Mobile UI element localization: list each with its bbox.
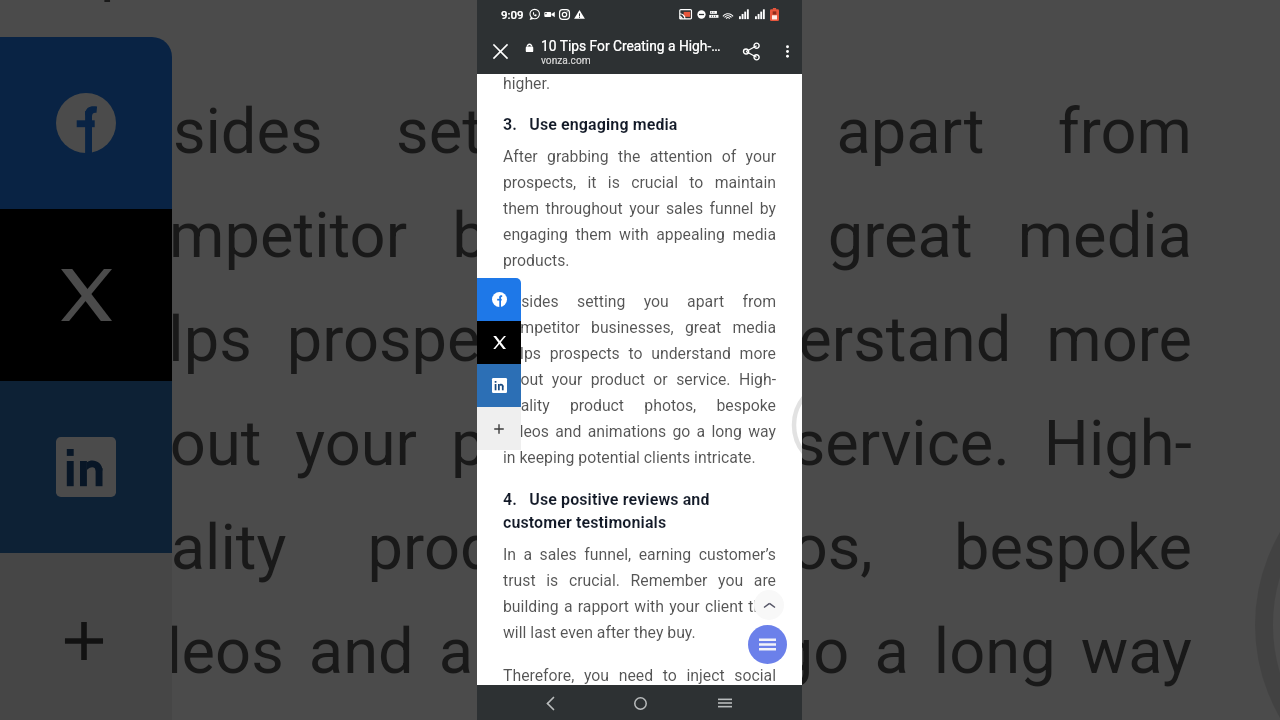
button[interactable]: X <box>477 321 521 364</box>
staticText: Besides setting you apart from competito… <box>100 93 1192 720</box>
button[interactable]: Close <box>477 28 524 74</box>
staticText: After grabbing the attention of your pro… <box>100 0 1192 1</box>
button[interactable]: Share <box>729 28 773 74</box>
staticText: Therefore, you need to inject social pro… <box>503 666 776 685</box>
button[interactable]: Back <box>531 684 569 720</box>
staticText: higher. <box>503 74 551 93</box>
button[interactable]: LinkedIn <box>477 364 521 407</box>
staticText: vonza.com <box>541 55 591 67</box>
button[interactable]: Facebook <box>477 278 521 321</box>
button[interactable]: More <box>477 407 521 450</box>
button[interactable]: Scroll to top <box>754 590 784 620</box>
button[interactable]: More options <box>773 28 802 74</box>
button[interactable]: X <box>0 209 172 381</box>
button[interactable]: LinkedIn <box>0 381 172 553</box>
staticText: 10 Tips For Creating a High-… <box>541 38 721 54</box>
staticText: 3. Use engaging media <box>503 115 678 134</box>
button[interactable]: Menu <box>748 625 787 664</box>
staticText: Besides setting you apart from competito… <box>503 292 776 466</box>
button[interactable]: Home <box>621 684 659 720</box>
button[interactable]: Facebook <box>0 37 172 209</box>
button[interactable]: Recent apps <box>706 684 744 720</box>
staticText: In a sales funnel, earning customer’s tr… <box>503 545 776 641</box>
staticText: 9:09 <box>501 8 524 21</box>
staticText: 4. Use positive reviews and customer tes… <box>503 490 776 532</box>
staticText: After grabbing the attention of your pro… <box>503 147 776 269</box>
button[interactable]: More <box>0 553 172 720</box>
